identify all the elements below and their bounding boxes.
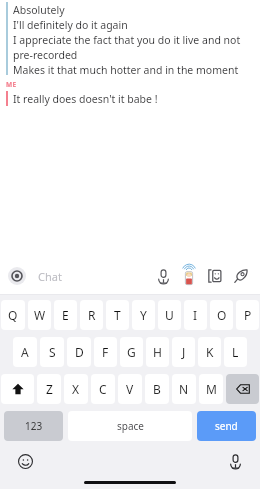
staticText: L bbox=[232, 344, 239, 360]
staticText: R bbox=[88, 307, 96, 323]
staticText: T bbox=[114, 307, 121, 323]
staticText: I'll definitely do it again bbox=[13, 18, 128, 32]
staticText: I appreciate the fact that you do it liv… bbox=[13, 33, 241, 47]
button[interactable]: A bbox=[13, 337, 37, 367]
button[interactable]: K bbox=[198, 337, 221, 367]
staticText: N bbox=[179, 381, 189, 397]
button[interactable]: space bbox=[68, 411, 192, 441]
button[interactable]: Backspace bbox=[226, 374, 259, 404]
button[interactable]: G bbox=[120, 337, 143, 367]
staticText: B bbox=[153, 381, 161, 397]
button[interactable]: R bbox=[80, 300, 103, 330]
staticText: K bbox=[206, 344, 214, 360]
button[interactable]: X bbox=[64, 374, 88, 404]
button[interactable]: Y bbox=[132, 300, 155, 330]
button[interactable]: S bbox=[40, 337, 64, 367]
staticText: S bbox=[49, 344, 56, 360]
button[interactable]: Send rocket bbox=[230, 265, 252, 287]
staticText: D bbox=[75, 344, 84, 360]
button[interactable]: U bbox=[158, 300, 181, 330]
staticText: J bbox=[182, 344, 186, 360]
staticText: E bbox=[62, 307, 69, 323]
button[interactable]: O bbox=[210, 300, 233, 330]
button[interactable]: 123 bbox=[4, 411, 63, 441]
staticText: 123 bbox=[25, 419, 43, 433]
staticText: ME bbox=[6, 80, 17, 89]
button[interactable]: C bbox=[91, 374, 115, 404]
button[interactable]: J bbox=[172, 337, 195, 367]
button[interactable]: send bbox=[197, 411, 256, 441]
button[interactable]: Bitmoji bbox=[178, 265, 200, 287]
button[interactable]: T bbox=[106, 300, 129, 330]
staticText: F bbox=[102, 344, 109, 360]
button[interactable]: Shift bbox=[1, 374, 34, 404]
staticText: Chat bbox=[38, 269, 62, 284]
staticText: X bbox=[72, 381, 80, 397]
staticText: Y bbox=[140, 307, 147, 323]
staticText: O bbox=[217, 307, 227, 323]
button[interactable]: M bbox=[199, 374, 223, 404]
staticText: C bbox=[99, 381, 107, 397]
staticText: P bbox=[244, 307, 252, 323]
button[interactable]: I bbox=[184, 300, 207, 330]
button[interactable]: Z bbox=[37, 374, 61, 404]
button[interactable]: Stickers bbox=[204, 265, 226, 287]
button[interactable]: Camera bbox=[8, 267, 26, 285]
staticText: V bbox=[126, 381, 134, 397]
button[interactable]: Voice input bbox=[225, 451, 245, 471]
button[interactable]: Q bbox=[1, 300, 25, 330]
staticText: space bbox=[117, 419, 144, 433]
staticText: M bbox=[206, 381, 217, 397]
staticText: pre-recorded bbox=[13, 48, 78, 62]
staticText: Absolutely bbox=[13, 3, 65, 17]
button[interactable]: F bbox=[94, 337, 117, 367]
staticText: Makes it that much hotter and in the mom… bbox=[13, 63, 239, 77]
button[interactable]: W bbox=[28, 300, 51, 330]
button[interactable]: N bbox=[172, 374, 196, 404]
button[interactable]: E bbox=[54, 300, 77, 330]
staticText: Q bbox=[8, 307, 18, 323]
button[interactable]: P bbox=[236, 300, 259, 330]
staticText: G bbox=[127, 344, 136, 360]
staticText: A bbox=[21, 344, 29, 360]
staticText: H bbox=[153, 344, 162, 360]
button[interactable]: Voice note bbox=[152, 265, 174, 287]
button[interactable]: V bbox=[118, 374, 142, 404]
button[interactable]: D bbox=[67, 337, 91, 367]
button[interactable]: B bbox=[145, 374, 169, 404]
button[interactable]: Emoji bbox=[15, 451, 35, 471]
staticText: I bbox=[193, 307, 198, 323]
staticText: U bbox=[165, 307, 174, 323]
button[interactable]: L bbox=[224, 337, 247, 367]
staticText: It really does doesn't it babe ! bbox=[13, 92, 158, 106]
button[interactable]: H bbox=[146, 337, 169, 367]
staticText: Z bbox=[46, 381, 53, 397]
staticText: send bbox=[215, 419, 238, 433]
button[interactable]: Chat bbox=[38, 258, 152, 294]
staticText: W bbox=[34, 307, 46, 323]
